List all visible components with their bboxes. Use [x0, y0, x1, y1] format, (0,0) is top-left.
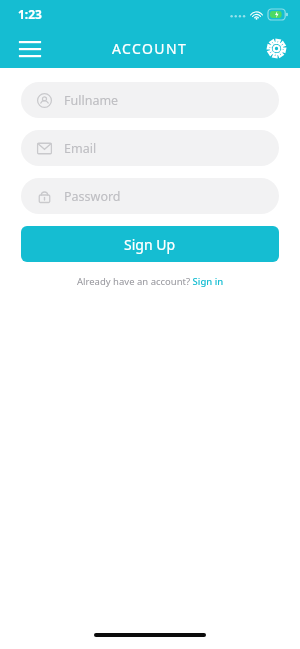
staticText: Password	[64, 188, 121, 205]
button[interactable]: Settings	[258, 30, 294, 66]
button[interactable]: Email	[21, 130, 279, 166]
staticText: Already have an account? Sign in	[77, 275, 224, 288]
button[interactable]: Fullname	[21, 82, 279, 118]
staticText: Email	[64, 140, 97, 157]
button[interactable]: Already have an account? Sign in	[73, 273, 228, 290]
staticText: 1:23	[18, 6, 42, 22]
staticText: Fullname	[64, 92, 119, 109]
button[interactable]: Sign Up	[21, 226, 279, 262]
button[interactable]: Password	[21, 178, 279, 214]
button[interactable]: Menu	[12, 30, 48, 66]
staticText: Sign Up	[124, 235, 176, 254]
staticText: ACCOUNT	[112, 39, 188, 58]
